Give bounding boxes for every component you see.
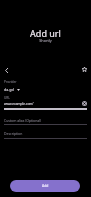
staticText: Add	[42, 183, 49, 188]
staticText: Provider	[4, 80, 17, 84]
button[interactable]: Add	[10, 180, 80, 192]
button[interactable]: Back	[0, 63, 14, 77]
staticText: URL	[4, 96, 10, 100]
staticText: Custom alias (Optional)	[4, 118, 42, 123]
staticText: Add url	[30, 27, 61, 39]
staticText: Description	[4, 131, 23, 136]
staticText: Shortly	[39, 38, 52, 43]
button[interactable]: Favorite	[77, 62, 91, 76]
button[interactable]: Clear	[81, 100, 88, 107]
staticText: da.gd	[4, 87, 14, 92]
staticText: www.example.com/	[4, 102, 34, 106]
